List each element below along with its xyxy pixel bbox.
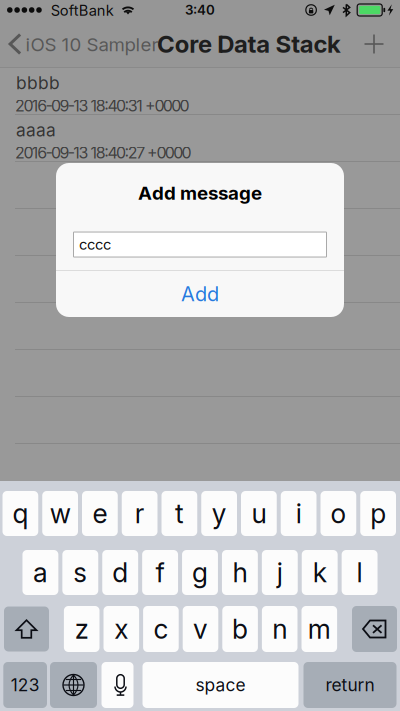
staticText: t xyxy=(175,498,184,529)
button[interactable]: f xyxy=(142,550,178,595)
button[interactable]: aaaa xyxy=(0,115,400,162)
staticText: f xyxy=(156,557,165,588)
staticText: i xyxy=(296,498,302,529)
staticText: m xyxy=(308,613,331,645)
staticText: a xyxy=(33,557,48,588)
button[interactable]: e xyxy=(82,491,118,536)
staticText: 2016-09-13 18:40:31 +0000 xyxy=(15,96,190,115)
staticText: o xyxy=(330,498,346,529)
staticText: c xyxy=(153,613,168,645)
staticText: z xyxy=(75,613,89,645)
button[interactable]: c xyxy=(143,606,179,652)
staticText: j xyxy=(277,557,283,588)
button[interactable]: y xyxy=(201,491,237,536)
staticText: 3:40 xyxy=(185,2,215,18)
staticText: Add message xyxy=(138,182,262,204)
staticText: w xyxy=(50,498,71,529)
button[interactable]: Next keyboard xyxy=(50,662,97,708)
button[interactable]: w xyxy=(42,491,78,536)
button[interactable]: r xyxy=(122,491,158,536)
button[interactable]: t xyxy=(161,491,197,536)
button[interactable]: o xyxy=(320,491,356,536)
staticText: d xyxy=(112,557,128,588)
staticText: p xyxy=(370,498,386,529)
staticText: r xyxy=(135,498,145,529)
button[interactable]: Shift xyxy=(4,606,49,651)
button[interactable]: n xyxy=(262,606,297,652)
staticText: q xyxy=(12,498,28,529)
staticText: k xyxy=(313,557,327,588)
button[interactable]: 123 xyxy=(3,662,47,708)
button[interactable]: b xyxy=(222,606,258,652)
staticText: n xyxy=(272,613,287,645)
button[interactable]: Dictation xyxy=(101,662,133,708)
button[interactable]: x xyxy=(103,606,139,652)
button[interactable]: q xyxy=(2,491,38,536)
button[interactable]: k xyxy=(302,550,338,595)
staticText: v xyxy=(193,613,208,645)
button[interactable]: v xyxy=(183,606,218,652)
staticText: y xyxy=(212,498,227,529)
button[interactable]: d xyxy=(102,550,138,595)
button[interactable]: p xyxy=(360,491,396,536)
button[interactable]: i xyxy=(281,491,317,536)
staticText: Add xyxy=(181,282,219,306)
staticText: space xyxy=(195,675,245,695)
button[interactable]: j xyxy=(262,550,298,595)
staticText: h xyxy=(232,557,247,588)
staticText: Core Data Stack xyxy=(157,30,341,58)
staticText: SoftBank xyxy=(51,2,114,19)
staticText: l xyxy=(357,557,363,588)
staticText: g xyxy=(192,557,208,588)
staticText: x xyxy=(114,613,128,645)
staticText: cccc xyxy=(79,236,111,253)
staticText: u xyxy=(251,498,266,529)
staticText: iOS 10 Sampler xyxy=(25,33,158,55)
staticText: e xyxy=(92,498,107,529)
button[interactable]: g xyxy=(182,550,218,595)
button[interactable]: space xyxy=(142,662,298,708)
button[interactable]: u xyxy=(241,491,277,536)
button[interactable]: return xyxy=(303,662,396,708)
button[interactable]: iOS 10 Sampler xyxy=(0,25,158,63)
button[interactable]: s xyxy=(62,550,98,595)
button[interactable]: z xyxy=(64,606,99,652)
button[interactable]: h xyxy=(222,550,258,595)
button[interactable]: Add xyxy=(352,22,396,66)
button[interactable]: a xyxy=(22,550,58,595)
staticText: bbbb xyxy=(16,73,60,93)
button[interactable]: l xyxy=(342,550,377,595)
button[interactable]: Add xyxy=(56,271,344,317)
button[interactable]: m xyxy=(301,606,337,652)
button[interactable]: bbbb xyxy=(0,68,400,115)
staticText: 123 xyxy=(11,675,40,695)
button[interactable]: Delete xyxy=(352,606,397,652)
staticText: 2016-09-13 18:40:27 +0000 xyxy=(15,143,192,162)
staticText: aaaa xyxy=(16,120,56,140)
staticText: b xyxy=(232,613,248,645)
staticText: return xyxy=(325,675,374,695)
staticText: s xyxy=(73,557,87,588)
